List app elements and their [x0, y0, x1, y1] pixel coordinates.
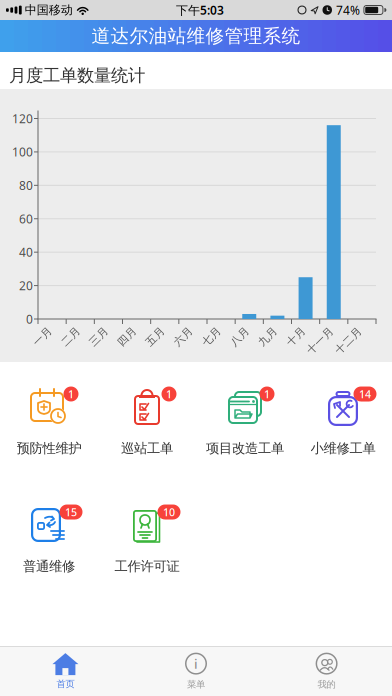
- staticText: 0: [26, 311, 33, 327]
- button[interactable]: 1: [98, 384, 196, 480]
- staticText: 14: [359, 387, 371, 401]
- staticText: 九月: [257, 330, 279, 343]
- staticText: 我的: [318, 679, 336, 690]
- button[interactable]: 1: [0, 384, 98, 480]
- staticText: 五月: [144, 330, 166, 343]
- staticText: 道达尔油站维修管理系统: [91, 24, 300, 47]
- staticText: 十二月: [332, 334, 365, 347]
- staticText: 七月: [200, 330, 222, 343]
- staticText: 1: [264, 387, 270, 401]
- staticText: 100: [12, 144, 33, 160]
- staticText: 中国移动: [25, 3, 73, 17]
- staticText: 八月: [229, 330, 251, 343]
- button[interactable]: 我的: [261, 647, 392, 696]
- staticText: 十月: [285, 330, 307, 343]
- staticText: 15: [65, 505, 77, 519]
- staticText: 20: [19, 278, 33, 293]
- staticText: 月度工单数量统计: [9, 65, 145, 86]
- staticText: 40: [19, 244, 33, 260]
- staticText: 首页: [56, 678, 74, 690]
- staticText: 项目改造工单: [206, 440, 284, 456]
- staticText: i: [194, 655, 198, 672]
- staticText: 三月: [88, 330, 110, 343]
- button[interactable]: 14: [294, 384, 392, 480]
- staticText: 菜单: [187, 679, 205, 690]
- staticText: 普通维修: [23, 558, 75, 574]
- button[interactable]: 首页: [0, 647, 131, 696]
- staticText: 二月: [60, 330, 82, 343]
- staticText: 下午5:03: [176, 2, 224, 18]
- staticText: 60: [19, 211, 33, 227]
- button[interactable]: 1: [196, 384, 294, 480]
- staticText: 1: [68, 387, 74, 401]
- staticText: 小维修工单: [310, 440, 375, 456]
- staticText: 一月: [31, 330, 53, 343]
- button[interactable]: 15: [0, 502, 98, 598]
- staticText: 预防性维护: [16, 440, 81, 456]
- staticText: 120: [12, 110, 33, 126]
- staticText: 1: [166, 387, 172, 401]
- button[interactable]: i: [131, 647, 261, 696]
- staticText: 80: [19, 177, 33, 193]
- staticText: 74%: [336, 2, 360, 18]
- staticText: 工作许可证: [114, 558, 179, 574]
- staticText: 六月: [172, 330, 194, 343]
- button[interactable]: 10: [98, 502, 196, 598]
- staticText: 四月: [116, 330, 138, 343]
- staticText: 巡站工单: [121, 440, 173, 456]
- staticText: 十一月: [304, 334, 337, 347]
- staticText: 10: [163, 505, 175, 519]
